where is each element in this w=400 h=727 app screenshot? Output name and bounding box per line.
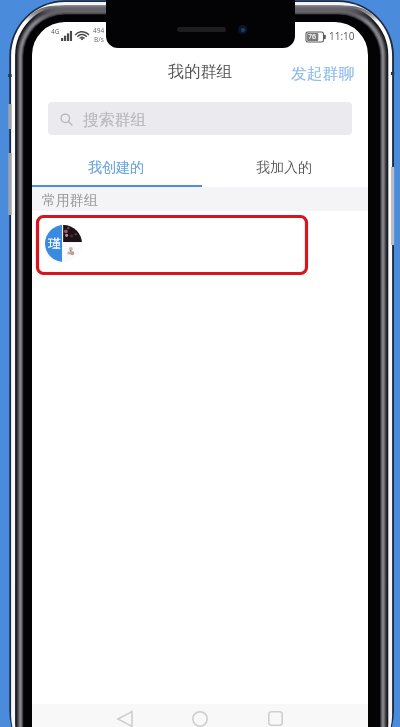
button[interactable]: Home — [184, 711, 216, 727]
button[interactable]: 搜索群组 — [48, 102, 352, 135]
button[interactable]: 我加入的 — [200, 140, 368, 187]
button[interactable]: Back — [109, 711, 141, 727]
button[interactable]: Recents — [259, 711, 291, 727]
staticText: 常用群组 — [42, 192, 98, 210]
staticText: B/s — [94, 35, 104, 44]
staticText: 76 — [308, 32, 317, 42]
staticText: 我创建的 — [88, 159, 144, 177]
staticText: 494 — [93, 26, 105, 35]
staticText: 11:10 — [329, 29, 355, 43]
button[interactable]: 瑾 — [32, 211, 368, 275]
staticText: 4G — [51, 27, 60, 36]
staticText: 我加入的 — [256, 159, 312, 177]
staticText: 我的群组 — [168, 61, 233, 81]
button[interactable]: 发起群聊 — [278, 53, 368, 89]
button[interactable]: 我创建的 — [32, 140, 200, 187]
staticText: 瑾 — [48, 236, 61, 252]
staticText: 发起群聊 — [291, 64, 355, 84]
staticText: 搜索群组 — [83, 110, 147, 130]
